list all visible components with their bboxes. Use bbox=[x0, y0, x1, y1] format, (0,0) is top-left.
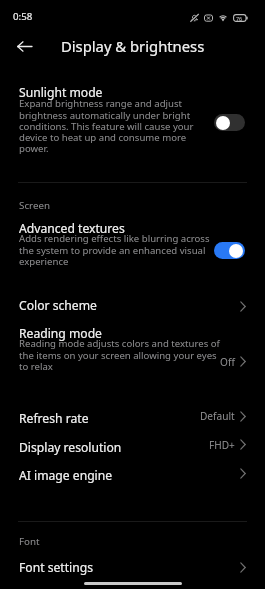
staticText: Sunlight mode bbox=[19, 84, 103, 101]
staticText: Reading mode bbox=[19, 325, 102, 342]
staticText: Off bbox=[220, 355, 235, 369]
staticText: Display & brightness bbox=[61, 36, 205, 56]
button[interactable]: Toggle bbox=[214, 242, 245, 259]
button[interactable]: Open bbox=[240, 468, 246, 479]
button[interactable]: Open bbox=[240, 301, 246, 312]
staticText: Reading mode adjusts colors and textures… bbox=[19, 337, 220, 373]
staticText: Font settings bbox=[19, 559, 94, 576]
staticText: Advanced textures bbox=[19, 220, 125, 237]
staticText: Display resolution bbox=[19, 439, 122, 456]
button[interactable]: Toggle bbox=[214, 114, 245, 131]
staticText: Screen bbox=[19, 199, 51, 212]
staticText: FHD+ bbox=[209, 438, 235, 452]
button[interactable]: Open bbox=[240, 439, 246, 450]
staticText: Font bbox=[19, 535, 40, 548]
staticText: Color scheme bbox=[19, 297, 97, 314]
staticText: Expand brightness range and adjust brigh… bbox=[19, 97, 204, 155]
button[interactable]: Open bbox=[240, 411, 246, 422]
button[interactable]: Open bbox=[240, 356, 246, 367]
button[interactable]: Back bbox=[8, 30, 40, 62]
staticText: 0:58 bbox=[13, 10, 33, 23]
staticText: Refresh rate bbox=[19, 410, 89, 427]
staticText: 76 bbox=[236, 15, 243, 22]
staticText: Default bbox=[200, 409, 235, 423]
button[interactable]: Open bbox=[240, 562, 246, 573]
staticText: Adds rendering effects like blurring acr… bbox=[19, 232, 210, 268]
staticText: AI image engine bbox=[19, 467, 113, 484]
